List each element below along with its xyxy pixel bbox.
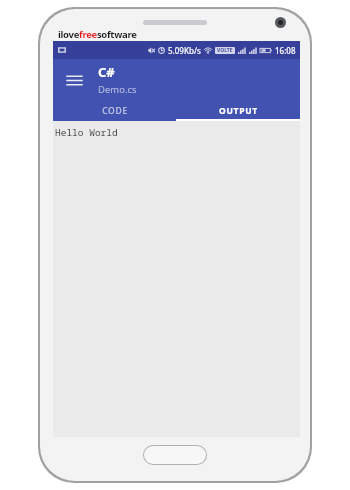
staticText: OUTPUT: [219, 105, 258, 117]
button[interactable]: OUTPUT: [176, 101, 300, 121]
staticText: ilovefreesoftware: [58, 28, 137, 41]
button[interactable]: Open navigation menu: [59, 65, 89, 95]
staticText: CODE: [102, 105, 128, 117]
staticText: Demo.cs: [98, 83, 137, 96]
button[interactable]: CODE: [53, 101, 176, 121]
staticText: 5.09Kb/s: [168, 45, 201, 56]
staticText: 16:08: [275, 45, 296, 56]
staticText: C#: [98, 63, 115, 81]
staticText: VOLTE: [217, 47, 233, 54]
button[interactable]: Home: [144, 446, 206, 464]
staticText: Hello World: [55, 126, 118, 139]
